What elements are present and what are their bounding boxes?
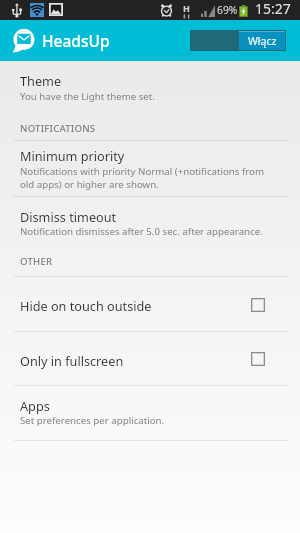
staticText: NOTIFICATIONS	[20, 122, 96, 135]
staticText: OTHER	[20, 255, 53, 268]
button[interactable]: Apps	[0, 386, 300, 440]
staticText: H	[183, 2, 190, 14]
staticText: 15:27	[255, 0, 291, 18]
staticText: Minimum priority	[20, 147, 125, 164]
button[interactable]: Minimum priority	[0, 141, 300, 196]
staticText: Hide on touch outside	[20, 297, 152, 314]
button[interactable]: Enable HeadsUp	[190, 30, 286, 51]
staticText: Only in fullscreen	[20, 352, 124, 369]
staticText: HeadsUp	[42, 30, 110, 51]
button[interactable]: Dismiss timeout	[0, 197, 300, 245]
staticText: Notification dismisses after 5.0 sec. af…	[20, 225, 263, 238]
staticText: Apps	[20, 397, 50, 414]
staticText: 69%	[217, 3, 238, 17]
staticText: Notifications with priority Normal (+not…	[20, 165, 265, 191]
staticText: You have the Light theme set.	[20, 90, 155, 103]
staticText: Dismiss timeout	[20, 208, 117, 225]
staticText: Theme	[20, 72, 62, 89]
staticText: Set preferences per application.	[20, 414, 165, 427]
button[interactable]: Hide on touch outside	[0, 276, 300, 331]
staticText: Włącz	[248, 34, 277, 48]
button[interactable]: Only in fullscreen	[0, 331, 300, 385]
button[interactable]: Theme	[0, 61, 300, 117]
